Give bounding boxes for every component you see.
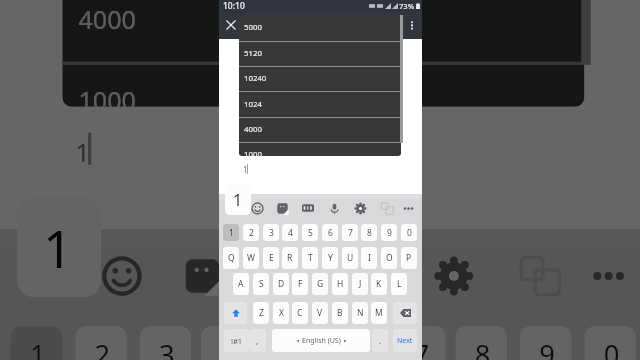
button[interactable]: P — [401, 247, 417, 269]
staticText: 8 — [475, 336, 491, 360]
button[interactable]: 7 — [394, 326, 446, 360]
button[interactable]: 8 — [361, 224, 377, 241]
button[interactable]: M — [371, 302, 387, 324]
staticText: Q — [228, 252, 235, 264]
staticText: 5120 — [244, 48, 262, 59]
staticText: 10240 — [244, 73, 267, 84]
button[interactable]: R — [282, 247, 298, 269]
button[interactable]: 8 — [455, 326, 507, 360]
button[interactable]: 6 — [322, 224, 338, 241]
button[interactable]: 1 — [56, 110, 594, 184]
button[interactable]: V — [312, 302, 328, 324]
button[interactable]: L — [391, 273, 407, 295]
button[interactable]: Z — [253, 302, 269, 324]
button[interactable]: 2 — [243, 224, 259, 241]
button[interactable]: !#1 — [224, 329, 249, 352]
button[interactable]: 4 — [282, 224, 298, 241]
button[interactable]: U — [342, 247, 358, 269]
button[interactable]: 5 — [302, 224, 318, 241]
button[interactable]: B — [332, 302, 348, 324]
button[interactable]: F — [292, 273, 308, 295]
button[interactable]: W — [243, 247, 259, 269]
staticText: 1 — [243, 164, 248, 175]
button[interactable]: I — [361, 247, 377, 269]
button[interactable]: K — [371, 273, 387, 295]
button[interactable]: 1000 — [62, 62, 584, 107]
button[interactable]: More — [403, 203, 414, 214]
button[interactable]: 1000 — [239, 142, 401, 156]
button[interactable]: , — [249, 329, 266, 352]
button[interactable]: 2 — [75, 326, 127, 360]
button[interactable]: Translate — [520, 255, 562, 297]
button[interactable]: X — [273, 302, 289, 324]
button[interactable]: 1 — [11, 326, 62, 360]
staticText: X — [279, 307, 284, 319]
button[interactable]: Q — [223, 247, 239, 269]
button[interactable]: 3 — [140, 326, 191, 360]
button[interactable]: 10240 — [239, 66, 401, 91]
button[interactable]: GIF — [302, 202, 314, 214]
button[interactable]: . — [372, 329, 388, 352]
button[interactable]: Stickers — [181, 255, 223, 297]
button[interactable]: Backspace — [393, 302, 417, 324]
button[interactable]: N — [352, 302, 368, 324]
button[interactable]: 1 — [223, 224, 239, 241]
staticText: 1000 — [78, 84, 136, 107]
button[interactable]: Emoji — [101, 255, 143, 297]
button[interactable]: Voice input — [328, 202, 341, 215]
staticText: 4000 — [78, 4, 136, 39]
button[interactable]: 6 — [330, 326, 381, 360]
button[interactable]: 3 — [263, 224, 279, 241]
staticText: 9 — [387, 227, 392, 239]
button[interactable]: 0 — [401, 224, 417, 241]
button[interactable]: 5 — [265, 326, 317, 360]
staticText: 0 — [604, 336, 620, 360]
button[interactable]: 1024 — [239, 92, 401, 117]
staticText: 5000 — [244, 22, 262, 33]
button[interactable]: 0 — [584, 326, 636, 360]
button[interactable]: H — [332, 273, 348, 295]
staticText: T — [308, 252, 313, 264]
button[interactable]: English (US) — [272, 329, 370, 352]
button[interactable]: S — [253, 273, 269, 295]
staticText: M — [375, 307, 383, 319]
button[interactable]: 1 — [237, 157, 404, 180]
button[interactable]: Emoji — [251, 202, 264, 215]
staticText: 1 — [229, 227, 234, 239]
button[interactable]: GIF — [265, 255, 304, 294]
button[interactable]: Next — [393, 329, 417, 352]
staticText: 3 — [269, 227, 274, 239]
button[interactable]: J — [352, 273, 368, 295]
button[interactable]: 7 — [342, 224, 358, 241]
button[interactable]: Settings — [433, 255, 475, 297]
button[interactable]: 5120 — [239, 41, 401, 66]
staticText: 4000 — [244, 124, 262, 135]
button[interactable]: 9 — [381, 224, 397, 241]
button[interactable]: 4 — [201, 326, 252, 360]
button[interactable]: Settings — [354, 202, 367, 215]
button[interactable]: Translate — [381, 202, 394, 215]
button[interactable]: A — [233, 273, 249, 295]
button[interactable]: 5000 — [239, 14, 401, 41]
button[interactable]: Stickers — [276, 202, 289, 215]
button[interactable]: Close — [224, 18, 238, 32]
button[interactable]: T — [302, 247, 318, 269]
button[interactable]: E — [263, 247, 279, 269]
button[interactable]: C — [292, 302, 308, 324]
button[interactable]: 4000 — [62, 0, 584, 62]
button[interactable]: G — [312, 273, 328, 295]
button[interactable]: 4000 — [239, 117, 401, 142]
staticText: 6 — [328, 227, 333, 239]
button[interactable]: More — [591, 258, 626, 294]
button[interactable]: Shift — [224, 302, 247, 324]
button[interactable]: More options — [405, 18, 419, 32]
button[interactable]: 9 — [520, 326, 572, 360]
button[interactable]: D — [273, 273, 289, 295]
button[interactable]: Y — [322, 247, 338, 269]
staticText: U — [347, 252, 354, 264]
button[interactable]: Voice input — [349, 255, 391, 297]
staticText: 5 — [285, 336, 301, 360]
staticText: . — [379, 335, 382, 347]
staticText: 7 — [414, 336, 430, 360]
button[interactable]: O — [381, 247, 397, 269]
